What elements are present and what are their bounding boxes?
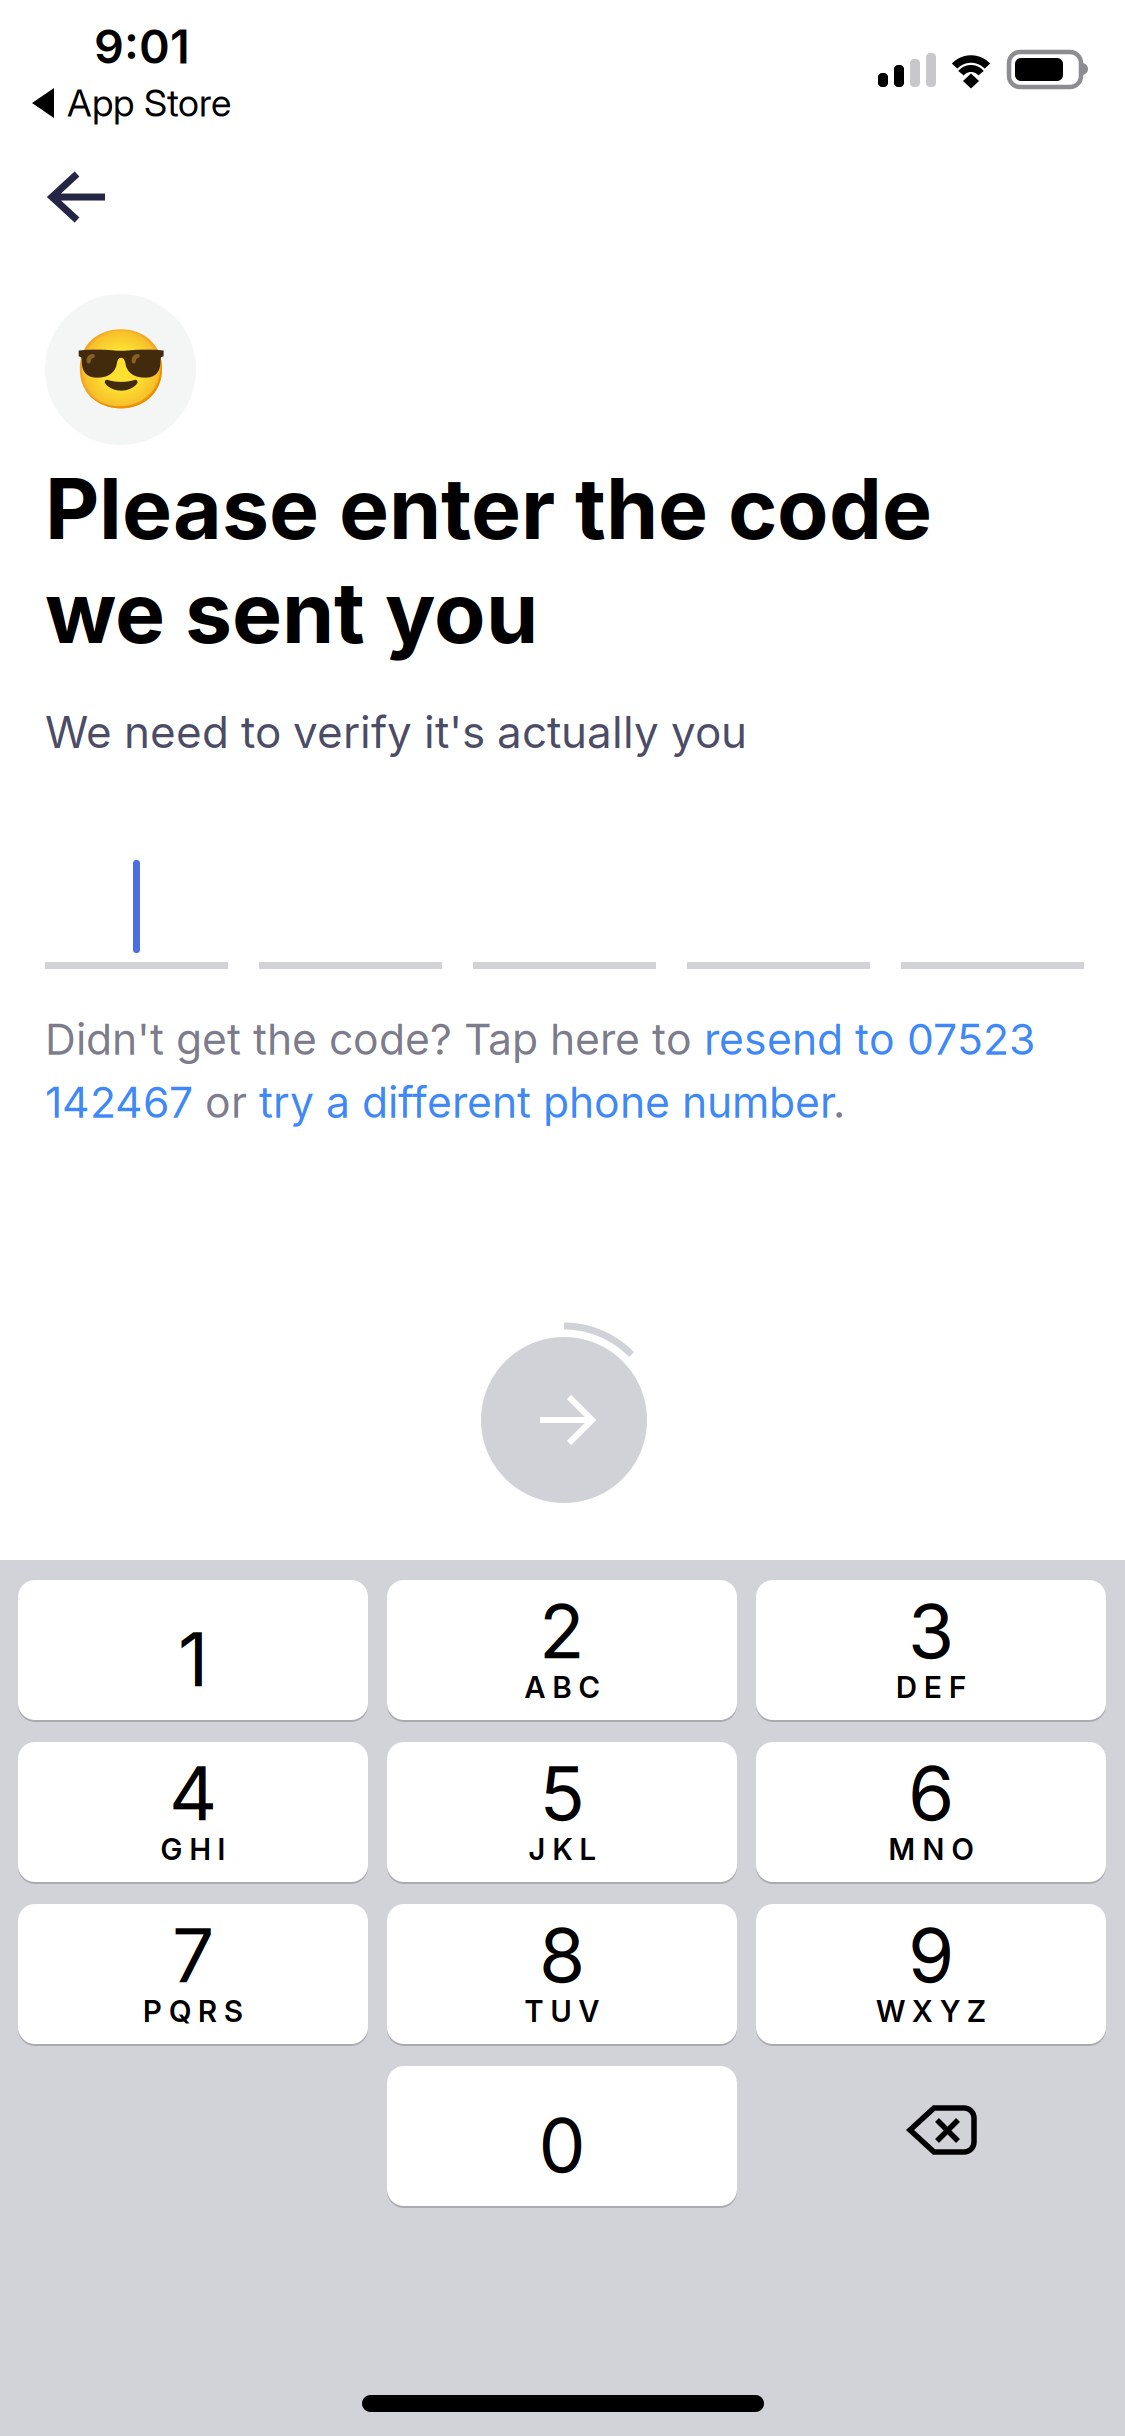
staticText: 😎 [72,325,168,414]
staticText: A B C [524,1670,599,1705]
button[interactable]: Delete [756,2066,1106,2206]
staticText: 6 [908,1749,954,1837]
staticText: 9:01 [94,19,190,74]
staticText: 8 [539,1911,585,1999]
button[interactable]: 8 [387,1904,737,2045]
staticText: 4 [169,1749,217,1837]
staticText: Please enter the code [45,459,932,558]
button[interactable]: 6 [756,1742,1106,1883]
button[interactable]: 1 [18,1580,368,1721]
staticText: W X Y Z [876,1994,986,2029]
button[interactable]: 7 [18,1904,368,2045]
staticText: We need to verify it's actually you [45,706,747,758]
staticText: 142467 or try a different phone number. [45,1077,845,1127]
staticText: Didn't get the code? Tap here to resend … [45,1014,1035,1064]
staticText: App Store [67,81,231,125]
staticText: M N O [888,1832,973,1867]
staticText: D E F [896,1670,966,1705]
staticText: 1 [178,1615,208,1703]
staticText: G H I [160,1832,225,1867]
button[interactable]: 2 [387,1580,737,1721]
button[interactable]: 4 [18,1742,368,1883]
staticText: 5 [539,1749,584,1837]
button[interactable]: Continue [481,1337,647,1503]
staticText: 9 [908,1911,954,1999]
staticText: 3 [908,1587,954,1675]
button[interactable]: 3 [756,1580,1106,1721]
staticText: 0 [538,2101,585,2189]
button[interactable]: 9 [756,1904,1106,2045]
staticText: J K L [528,1832,595,1867]
button[interactable]: 0 [387,2066,737,2207]
button[interactable]: Back [35,142,165,252]
staticText: 7 [172,1911,214,1999]
staticText: P Q R S [143,1994,243,2029]
staticText: we sent you [45,563,538,662]
button[interactable]: 5 [387,1742,737,1883]
staticText: 2 [539,1587,585,1675]
staticText: T U V [524,1994,599,2029]
